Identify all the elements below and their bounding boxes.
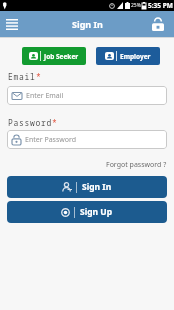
staticText: 25%	[131, 2, 141, 9]
staticText: 5:35 PM	[148, 1, 173, 10]
staticText: Forgot password ?	[106, 160, 167, 170]
button[interactable]	[5, 17, 19, 31]
staticText: Employer	[120, 52, 151, 61]
staticText: Enter Password	[25, 135, 77, 145]
staticText: Password	[8, 117, 52, 128]
button[interactable]: Sign In	[7, 176, 167, 198]
staticText: Sign In	[72, 18, 103, 30]
staticText: *	[52, 117, 57, 128]
staticText: Enter Email	[26, 91, 64, 101]
button[interactable]	[150, 17, 165, 32]
button[interactable]: Forgot password ?	[106, 160, 167, 170]
staticText: Sign In	[82, 181, 112, 193]
button[interactable]: Job Seeker	[22, 47, 86, 65]
button[interactable]: Sign Up	[7, 201, 167, 223]
button[interactable]: Enter Email	[7, 86, 167, 105]
button[interactable]: Employer	[96, 47, 160, 65]
button[interactable]: Enter Password	[7, 130, 167, 149]
staticText: Email	[8, 71, 36, 82]
staticText: Sign Up	[80, 206, 113, 218]
staticText: *	[36, 71, 41, 82]
staticText: Job Seeker	[44, 52, 79, 61]
